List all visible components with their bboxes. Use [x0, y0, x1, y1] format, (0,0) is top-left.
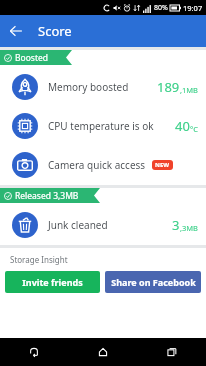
staticText: Memory boosted	[48, 80, 129, 94]
button[interactable]: Home	[68, 338, 137, 366]
staticText: Share on Facebook	[111, 276, 196, 288]
staticText: Storage Insight	[10, 254, 68, 265]
staticText: 80%	[154, 3, 168, 13]
button[interactable]: Back	[0, 15, 32, 47]
staticText: CPU temperature is ok	[48, 119, 154, 133]
staticText: 19:07	[183, 3, 203, 13]
staticText: NEW	[155, 161, 170, 169]
button[interactable]: Memory boosted	[0, 68, 206, 105]
staticText: 189	[157, 78, 180, 96]
staticText: Score	[38, 22, 72, 40]
button[interactable]: Invite friends	[5, 271, 100, 293]
staticText: Released 3,3MB	[15, 190, 79, 202]
button[interactable]: Share on Facebook	[105, 271, 201, 293]
staticText: Boosted	[15, 52, 48, 64]
staticText: 40	[175, 117, 190, 135]
staticText: °C	[190, 124, 198, 134]
button[interactable]: Junk cleaned	[0, 206, 206, 243]
button[interactable]: Camera quick access	[0, 146, 206, 183]
button[interactable]: CPU temperature is ok	[0, 107, 206, 144]
staticText: 3	[172, 216, 180, 234]
staticText: ,1MB	[180, 85, 198, 95]
staticText: Invite friends	[22, 276, 83, 288]
staticText: Camera quick access	[48, 158, 146, 172]
button[interactable]: Back	[0, 338, 68, 366]
staticText: ,3MB	[180, 223, 198, 233]
staticText: Junk cleaned	[48, 218, 108, 232]
button[interactable]: Recents	[137, 338, 206, 366]
